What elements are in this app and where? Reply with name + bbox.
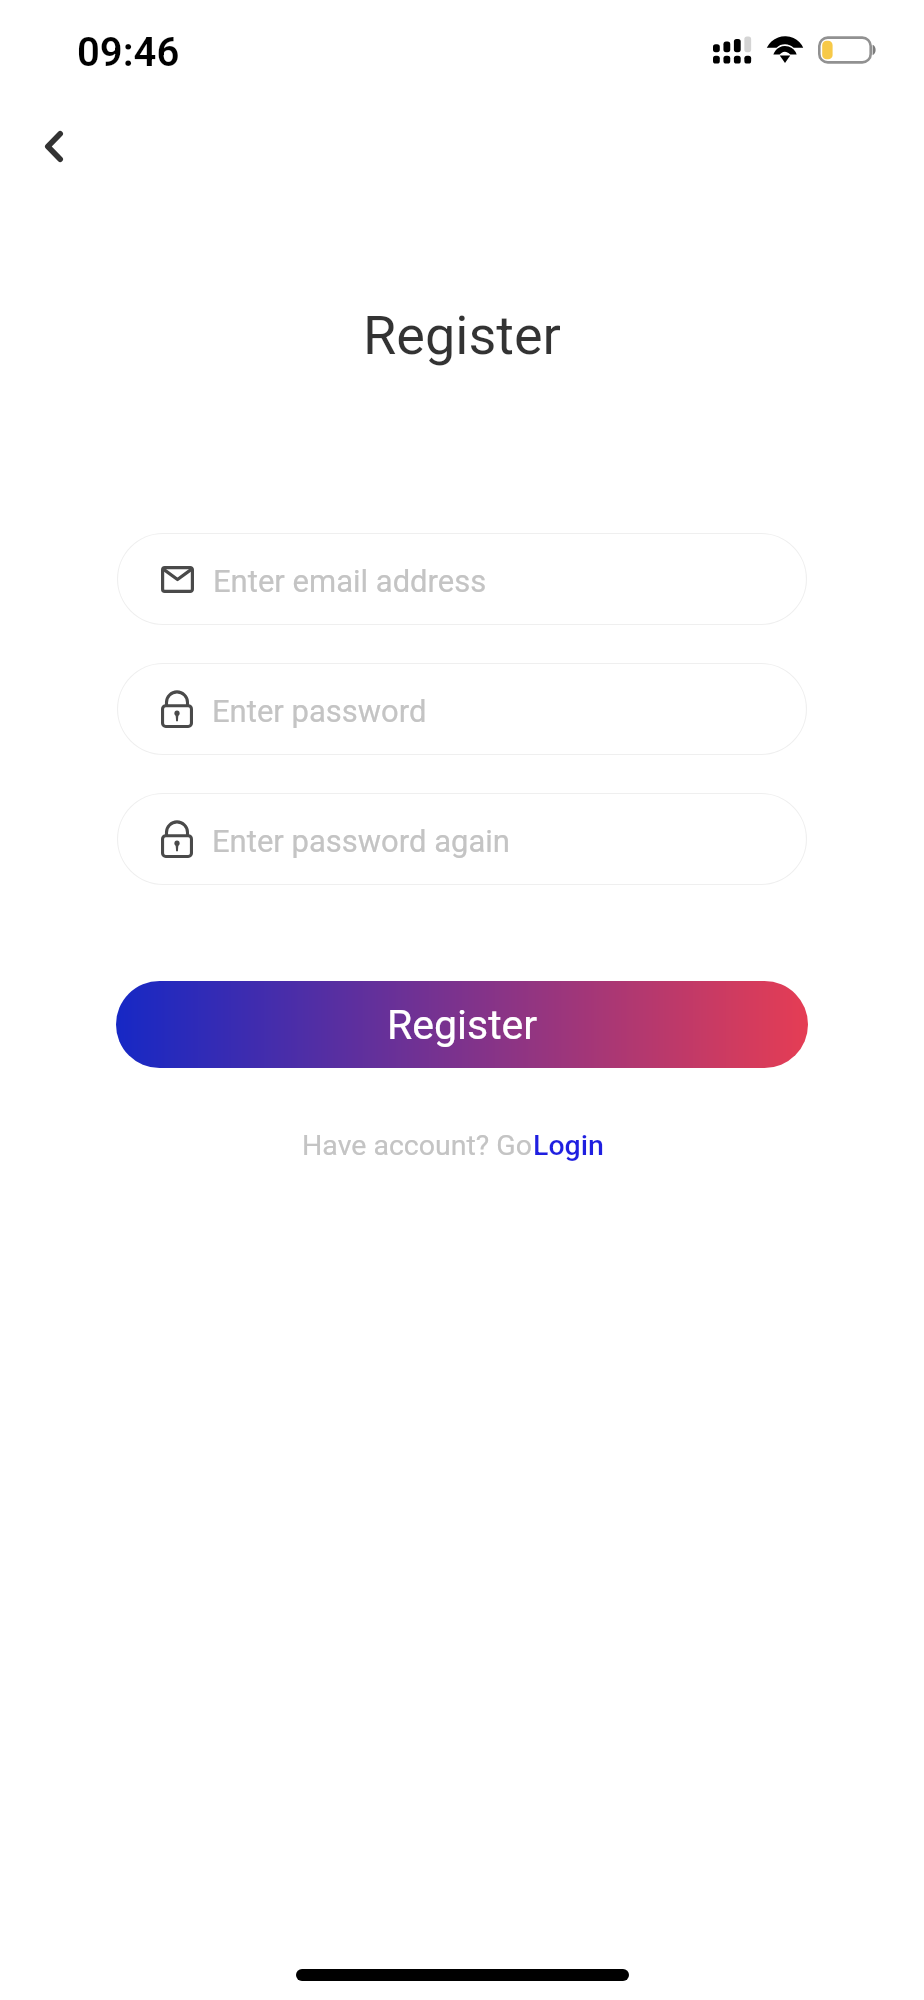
- staticText: Have account? Go: [302, 1129, 533, 1162]
- button[interactable]: Enter password again: [117, 793, 807, 885]
- staticText: Register: [0, 304, 924, 367]
- staticText: Enter password: [212, 693, 427, 729]
- button[interactable]: Back: [22, 114, 86, 178]
- staticText: 09:46: [77, 29, 180, 76]
- staticText: Login: [533, 1129, 604, 1162]
- staticText: Enter email address: [213, 563, 487, 599]
- button[interactable]: Login: [533, 1129, 604, 1162]
- staticText: Enter password again: [212, 823, 510, 859]
- button[interactable]: Register: [116, 981, 808, 1068]
- staticText: Register: [387, 1001, 538, 1049]
- button[interactable]: Enter email address: [117, 533, 807, 625]
- button[interactable]: Enter password: [117, 663, 807, 755]
